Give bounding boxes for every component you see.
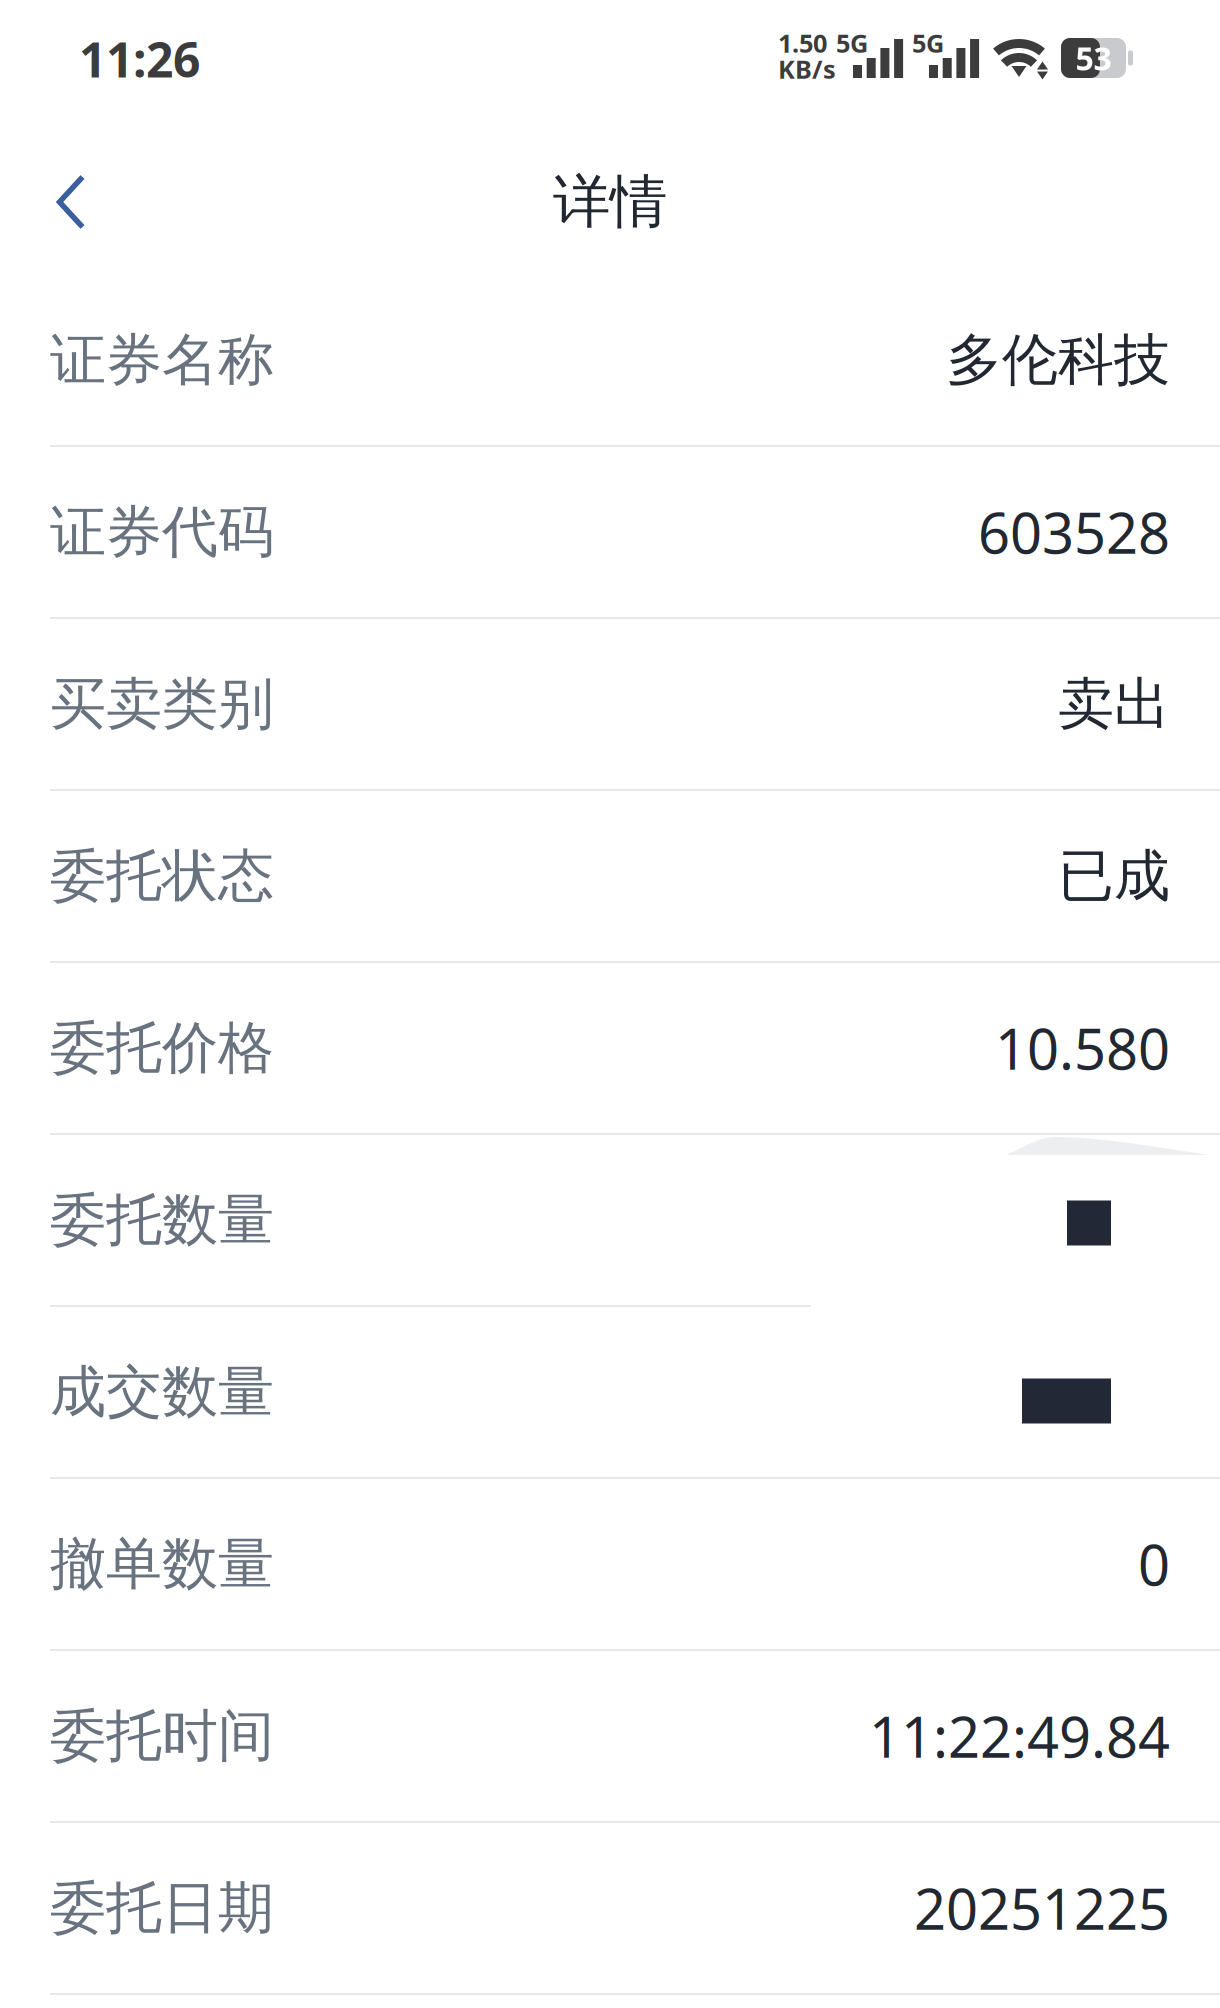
staticText: 20251225 [914, 1871, 1170, 1945]
staticText: 委托价格 [50, 1014, 274, 1082]
staticText: 603528 [978, 495, 1170, 569]
staticText: 5G [836, 26, 868, 60]
staticText: 5G [912, 26, 944, 60]
staticText: 委托数量 [50, 1186, 274, 1254]
staticText: KB/s [778, 52, 836, 86]
staticText: 10.580 [995, 1011, 1170, 1085]
staticText: 委托日期 [50, 1874, 274, 1942]
staticText: 详情 [553, 167, 667, 237]
staticText: 53 [1075, 37, 1111, 79]
staticText: 买卖类别 [50, 670, 274, 738]
staticText: 11:22:49.84 [869, 1699, 1170, 1773]
staticText: 多伦科技 [946, 326, 1170, 394]
staticText: 委托状态 [50, 842, 274, 910]
staticText: 成交数量 [50, 1358, 274, 1426]
staticText: 证券代码 [50, 498, 274, 566]
staticText: 0 [1138, 1527, 1170, 1601]
staticText: 委托时间 [50, 1702, 274, 1770]
staticText: 撤单数量 [50, 1530, 274, 1598]
staticText: 已成 [1058, 842, 1170, 910]
staticText: 卖出 [1058, 670, 1170, 738]
staticText: 11:26 [79, 27, 200, 91]
staticText: 证券名称 [50, 326, 274, 394]
staticText: 1.50 [778, 26, 827, 60]
button[interactable]: Back [2, 142, 140, 262]
